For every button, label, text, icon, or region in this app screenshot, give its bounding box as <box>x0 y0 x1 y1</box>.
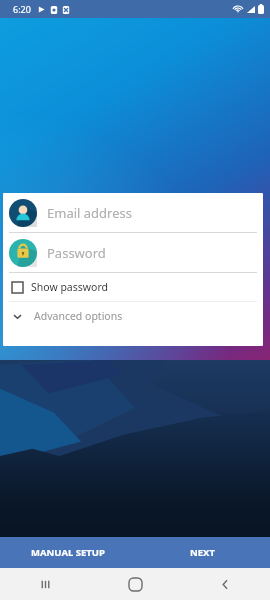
button[interactable]: Expand advanced options <box>9 302 257 330</box>
button[interactable]: Recent apps <box>0 568 90 600</box>
button[interactable]: NEXT <box>135 537 270 568</box>
staticText: Password <box>47 244 106 262</box>
other: Expand advanced options <box>12 311 23 322</box>
staticText: 6:20 <box>13 3 31 15</box>
button[interactable]: Account <box>9 193 257 232</box>
button[interactable]: Home <box>90 568 180 600</box>
button[interactable]: Password <box>9 233 257 272</box>
staticText: Email address <box>47 204 132 222</box>
staticText: MANUAL SETUP <box>31 546 105 559</box>
staticText: Show password <box>31 280 108 294</box>
button[interactable]: Show password <box>9 273 257 301</box>
staticText: Advanced options <box>34 309 123 323</box>
button[interactable]: MANUAL SETUP <box>0 537 135 568</box>
other: Password <box>9 239 37 267</box>
staticText: NEXT <box>190 546 215 559</box>
other: Account <box>9 199 37 227</box>
button[interactable]: Back <box>180 568 270 600</box>
